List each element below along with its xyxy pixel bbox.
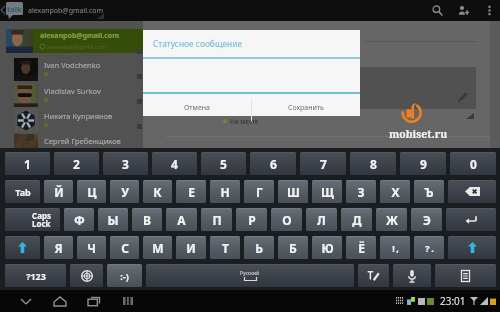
button[interactable]: Add contact (451, 0, 476, 21)
button[interactable]: 2 (54, 152, 99, 175)
button[interactable]: Никита Куприянов (0, 109, 143, 133)
button[interactable]: Э (411, 208, 442, 231)
button[interactable]: ?123 (5, 264, 66, 287)
button[interactable]: Edit status (455, 90, 469, 104)
button[interactable]: More options (480, 0, 498, 21)
staticText: Ivan Vodchenko (44, 60, 101, 70)
staticText: 23:01 (440, 294, 466, 308)
staticText: alexanpob@gmail.com (40, 31, 120, 41)
button[interactable]: Backspace (448, 180, 496, 203)
other: Shift (5, 236, 40, 259)
staticText: Л (317, 212, 326, 228)
button[interactable]: Ч (77, 236, 106, 259)
button[interactable]: В (132, 208, 162, 231)
button[interactable]: Сергей Гребенщиков (0, 134, 143, 148)
button[interactable]: Ё (346, 236, 376, 259)
button[interactable]: Handwriting (358, 264, 389, 287)
button[interactable]: О (271, 208, 302, 231)
button[interactable]: 4 (152, 152, 197, 175)
staticText: Caps Lock (32, 210, 51, 229)
staticText: 9 (420, 156, 427, 172)
button[interactable]: Я (44, 236, 73, 259)
button[interactable]: Ы (98, 208, 128, 231)
staticText: Ъ (424, 184, 434, 200)
button[interactable]: Caps Lock (5, 208, 60, 231)
button[interactable]: ! , (380, 236, 410, 259)
button[interactable]: Change language (70, 264, 103, 287)
button[interactable]: 8 (350, 152, 396, 175)
button[interactable]: Enter (446, 208, 496, 231)
button[interactable]: 9 (400, 152, 446, 175)
button[interactable]: Н (210, 180, 240, 203)
button[interactable]: alexanpob@gmail.com (0, 29, 143, 53)
button[interactable]: С (110, 236, 139, 259)
button[interactable]: Ж (376, 208, 407, 231)
button[interactable]: П (201, 208, 232, 231)
button[interactable]: Ivan Vodchenko (0, 58, 143, 82)
button[interactable]: Д (341, 208, 372, 231)
staticText: Ф (74, 212, 85, 228)
button[interactable]: 6 (250, 152, 296, 175)
button[interactable]: Е (176, 180, 206, 203)
button[interactable]: Clipboard (435, 264, 496, 287)
button[interactable]: Отмена (143, 97, 251, 119)
button[interactable]: Ю (312, 236, 342, 259)
button[interactable]: Х (380, 180, 410, 203)
button[interactable]: Р (236, 208, 267, 231)
button[interactable]: Screenshot (116, 290, 140, 312)
button[interactable]: Ф (64, 208, 94, 231)
button[interactable]: Shift (448, 236, 496, 259)
button[interactable]: Л (306, 208, 337, 231)
button[interactable]: Й (44, 180, 73, 203)
button[interactable]: Т (210, 236, 240, 259)
button[interactable]: Ц (77, 180, 106, 203)
staticText: И (186, 240, 196, 256)
button[interactable]: Г (244, 180, 274, 203)
button[interactable]: Space (146, 264, 354, 287)
staticText: alexanpob@gmail.com (28, 6, 104, 16)
staticText: Русский (240, 270, 260, 277)
button[interactable]: Back (14, 290, 38, 312)
button[interactable]: У (110, 180, 139, 203)
staticText: talk (7, 4, 22, 14)
staticText: Ш (287, 184, 300, 200)
staticText: 3 (122, 156, 129, 172)
button[interactable]: Сохранить (252, 97, 360, 119)
button[interactable]: Ъ (414, 180, 444, 203)
staticText: Б (289, 240, 297, 256)
staticText: Vladislav Surkov (44, 86, 101, 96)
button[interactable]: Щ (312, 180, 342, 203)
button[interactable]: Ш (278, 180, 308, 203)
staticText: К (153, 184, 162, 200)
button[interactable]: Б (278, 236, 308, 259)
staticText: Никита Куприянов (44, 111, 113, 121)
staticText: На месте (230, 117, 259, 126)
staticText: Ь (255, 240, 263, 256)
button[interactable]: ? . (414, 236, 444, 259)
button[interactable]: М (143, 236, 172, 259)
button[interactable]: К (143, 180, 172, 203)
button[interactable]: А (166, 208, 197, 231)
staticText: ! , (392, 242, 399, 254)
button[interactable]: 7 (300, 152, 346, 175)
button[interactable]: И (176, 236, 206, 259)
button[interactable]: З (346, 180, 376, 203)
button[interactable]: Vladislav Surkov (0, 84, 143, 108)
staticText: Ц (87, 184, 97, 200)
button[interactable]: Shift (5, 236, 40, 259)
staticText: Я (54, 240, 63, 256)
button[interactable]: talk (6, 2, 23, 19)
button[interactable]: 0 (450, 152, 496, 175)
button[interactable]: 1 (5, 152, 50, 175)
button[interactable]: Search (425, 0, 450, 21)
button[interactable]: Tab (5, 180, 40, 203)
button[interactable]: Voice input (393, 264, 431, 287)
button[interactable]: Home (48, 290, 72, 312)
staticText: Н (220, 184, 230, 200)
button[interactable]: 3 (103, 152, 148, 175)
button[interactable]: Recent apps (82, 290, 106, 312)
staticText: Ю (321, 240, 334, 256)
button[interactable]: Ь (244, 236, 274, 259)
button[interactable]: :-) (107, 264, 142, 287)
button[interactable]: 5 (201, 152, 246, 175)
